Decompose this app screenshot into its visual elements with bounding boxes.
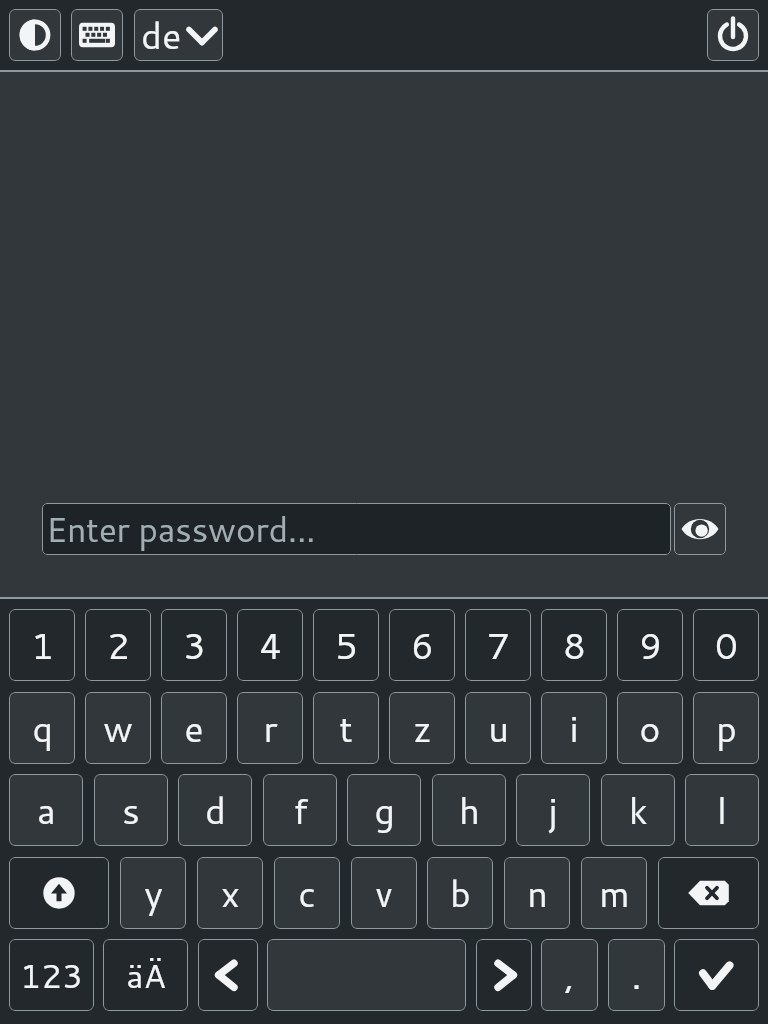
button[interactable]: Enter	[674, 939, 759, 1011]
button[interactable]: k	[601, 774, 675, 846]
staticText: 4	[259, 620, 282, 671]
staticText: i	[569, 703, 579, 754]
button[interactable]: w	[85, 692, 151, 764]
button[interactable]: q	[9, 692, 75, 764]
staticText: b	[450, 868, 471, 919]
button[interactable]: 0	[693, 609, 759, 681]
button[interactable]: 5	[313, 609, 379, 681]
staticText: h	[459, 785, 480, 836]
button[interactable]: i	[541, 692, 607, 764]
button[interactable]: Move cursor right	[476, 939, 532, 1011]
staticText: de	[141, 10, 182, 61]
button[interactable]: p	[693, 692, 759, 764]
button[interactable]: n	[504, 857, 570, 929]
staticText: r	[263, 703, 278, 754]
button[interactable]: y	[120, 857, 186, 929]
button[interactable]: Power off	[707, 9, 759, 61]
button[interactable]: de	[134, 9, 223, 61]
staticText: x	[221, 868, 240, 919]
staticText: 123	[20, 952, 83, 999]
button[interactable]: 2	[85, 609, 151, 681]
staticText: v	[375, 868, 393, 919]
staticText: z	[413, 703, 432, 754]
staticText: j	[548, 785, 558, 836]
button[interactable]: 1	[9, 609, 75, 681]
staticText: u	[488, 703, 509, 754]
button[interactable]: l	[685, 774, 759, 846]
button[interactable]: Shift	[9, 857, 109, 929]
button[interactable]: f	[263, 774, 337, 846]
button[interactable]: m	[581, 857, 647, 929]
staticText: p	[716, 703, 737, 754]
button[interactable]: 9	[617, 609, 683, 681]
staticText: e	[184, 703, 204, 754]
staticText: k	[629, 785, 648, 836]
button[interactable]: 7	[465, 609, 531, 681]
button[interactable]: Space	[267, 939, 466, 1011]
staticText: o	[639, 703, 661, 754]
button[interactable]: o	[617, 692, 683, 764]
button[interactable]: Backspace	[658, 857, 759, 929]
button[interactable]: z	[389, 692, 455, 764]
button[interactable]: r	[237, 692, 303, 764]
staticText: g	[374, 785, 395, 836]
staticText: l	[717, 785, 727, 836]
button[interactable]: 3	[161, 609, 227, 681]
button[interactable]: h	[432, 774, 506, 846]
staticText: w	[103, 703, 133, 754]
staticText: d	[205, 785, 226, 836]
button[interactable]: Show password	[674, 503, 726, 555]
staticText: c	[298, 868, 316, 919]
staticText: .	[631, 950, 642, 1001]
staticText: m	[599, 868, 630, 919]
staticText: q	[32, 703, 53, 754]
button[interactable]: 4	[237, 609, 303, 681]
button[interactable]: Move cursor left	[198, 939, 258, 1011]
staticText: y	[144, 868, 163, 919]
button[interactable]: äÄ	[103, 939, 188, 1011]
staticText: 5	[335, 620, 358, 671]
button[interactable]: c	[274, 857, 340, 929]
button[interactable]: a	[9, 774, 83, 846]
staticText: f	[293, 785, 308, 836]
staticText: 0	[715, 620, 738, 671]
button[interactable]: ,	[541, 939, 598, 1011]
staticText: 6	[411, 620, 434, 671]
button[interactable]: b	[427, 857, 493, 929]
button[interactable]: v	[351, 857, 417, 929]
button[interactable]: 8	[541, 609, 607, 681]
staticText: Enter password...	[46, 505, 316, 553]
staticText: 7	[487, 620, 510, 671]
staticText: 9	[639, 620, 662, 671]
staticText: 3	[183, 620, 206, 671]
button[interactable]: 123	[9, 939, 94, 1011]
button[interactable]: Toggle high contrast	[9, 9, 61, 61]
button[interactable]: x	[197, 857, 263, 929]
button[interactable]: .	[608, 939, 665, 1011]
staticText: ,	[564, 950, 575, 1001]
button[interactable]: Show on-screen keyboard	[71, 9, 123, 61]
button[interactable]: e	[161, 692, 227, 764]
button[interactable]: g	[347, 774, 421, 846]
staticText: 1	[31, 620, 54, 671]
staticText: a	[37, 785, 56, 836]
button[interactable]: s	[94, 774, 168, 846]
button[interactable]: Enter password...	[42, 503, 671, 555]
staticText: äÄ	[126, 952, 166, 999]
staticText: n	[527, 868, 548, 919]
staticText: 8	[563, 620, 586, 671]
staticText: t	[339, 703, 353, 754]
button[interactable]: t	[313, 692, 379, 764]
button[interactable]: 6	[389, 609, 455, 681]
button[interactable]: d	[178, 774, 252, 846]
button[interactable]: j	[516, 774, 590, 846]
button[interactable]: u	[465, 692, 531, 764]
staticText: s	[122, 785, 140, 836]
staticText: 2	[107, 620, 130, 671]
